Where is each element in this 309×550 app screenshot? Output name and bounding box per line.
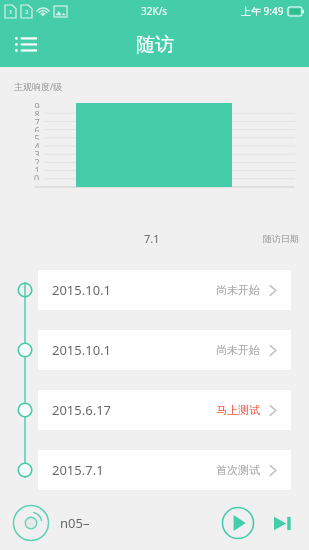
button[interactable]: 2015.6.17 bbox=[38, 390, 291, 430]
button[interactable]: 2015.10.1 bbox=[38, 270, 291, 310]
staticText: .7 bbox=[32, 116, 40, 124]
button[interactable]: Now playing bbox=[12, 504, 90, 542]
staticText: 随访 bbox=[136, 33, 174, 57]
staticText: 马上测试 bbox=[216, 403, 260, 417]
staticText: 32K/s bbox=[141, 4, 168, 18]
staticText: .3 bbox=[32, 148, 40, 156]
staticText: .2 bbox=[32, 156, 40, 164]
staticText: 2015.6.17 bbox=[52, 401, 112, 419]
button[interactable]: Next bbox=[269, 510, 295, 536]
staticText: 2015.7.1 bbox=[52, 461, 104, 479]
staticText: n05– bbox=[60, 514, 90, 532]
staticText: .5 bbox=[32, 132, 40, 140]
staticText: 首次测试 bbox=[216, 463, 260, 477]
staticText: 2 bbox=[25, 8, 29, 16]
staticText: 2015.10.1 bbox=[52, 281, 112, 299]
staticText: .6 bbox=[32, 124, 40, 132]
staticText: 7.1 bbox=[144, 231, 160, 246]
other: Now playing bbox=[12, 504, 50, 542]
button[interactable]: 2015.10.1 bbox=[38, 330, 291, 370]
staticText: .1 bbox=[32, 164, 40, 172]
button[interactable]: Menu bbox=[8, 27, 44, 63]
staticText: .8 bbox=[32, 108, 40, 116]
button[interactable]: 2015.7.1 bbox=[38, 450, 291, 490]
staticText: 1 bbox=[9, 8, 13, 16]
staticText: 上午 9:49 bbox=[241, 4, 284, 18]
staticText: 0 bbox=[34, 172, 40, 180]
button[interactable]: Play bbox=[221, 506, 255, 540]
staticText: .4 bbox=[32, 140, 40, 148]
staticText: 主观响度/级 bbox=[14, 80, 63, 92]
staticText: 2015.10.1 bbox=[52, 341, 112, 359]
staticText: 尚未开始 bbox=[216, 283, 260, 297]
staticText: .9 bbox=[32, 100, 40, 108]
staticText: 尚未开始 bbox=[216, 343, 260, 357]
staticText: 随访日期 bbox=[263, 233, 299, 244]
